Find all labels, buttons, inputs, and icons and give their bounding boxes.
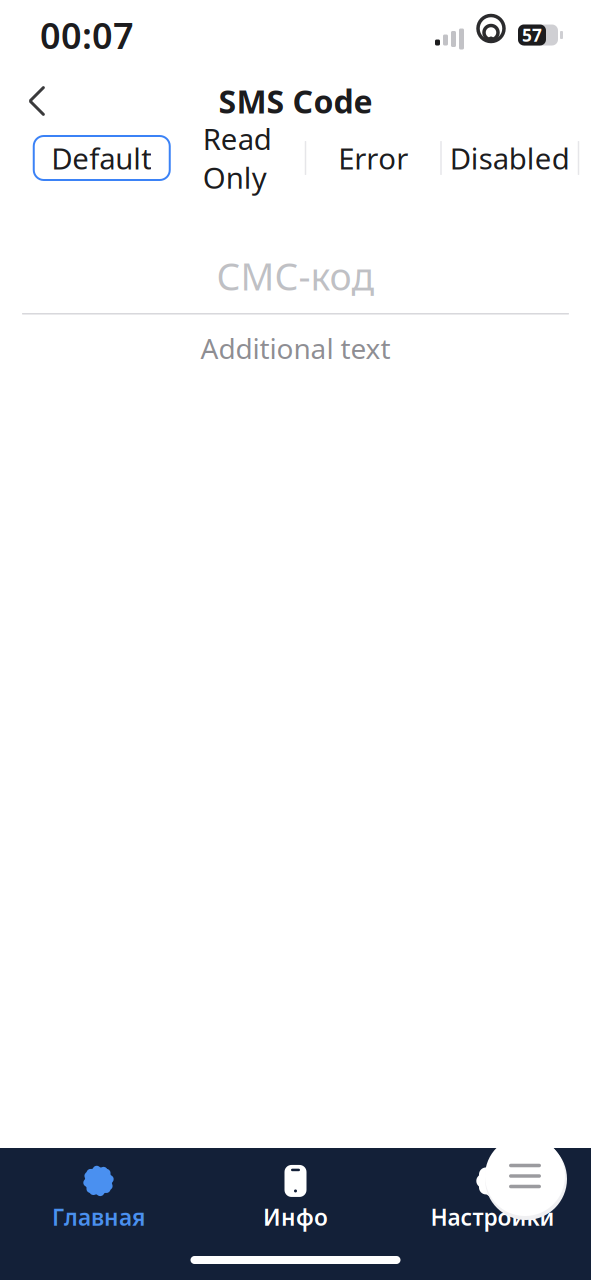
button[interactable]: Default (34, 136, 170, 180)
staticText: Disabled (450, 138, 570, 177)
staticText: Default (51, 138, 152, 177)
button[interactable]: Read Only (170, 136, 305, 180)
staticText: Additional text (200, 329, 390, 367)
button[interactable]: Инфо (197, 1166, 394, 1230)
button[interactable]: Настройки (394, 1166, 591, 1230)
staticText: Инфо (263, 1202, 328, 1232)
staticText: 57 (522, 23, 542, 46)
staticText: SMS Code (218, 80, 372, 122)
staticText: Главная (52, 1202, 145, 1232)
button[interactable]: Error (306, 136, 440, 180)
button[interactable]: Back (8, 72, 66, 130)
staticText: Настройки (430, 1202, 554, 1232)
button[interactable]: Menu (482, 1132, 568, 1220)
button[interactable]: Disabled (442, 136, 578, 180)
staticText: СМС-код (216, 251, 374, 301)
staticText: Error (338, 138, 408, 177)
button[interactable]: Главная (0, 1166, 197, 1230)
staticText: Read Only (203, 119, 272, 197)
staticText: 00:07 (40, 11, 134, 59)
